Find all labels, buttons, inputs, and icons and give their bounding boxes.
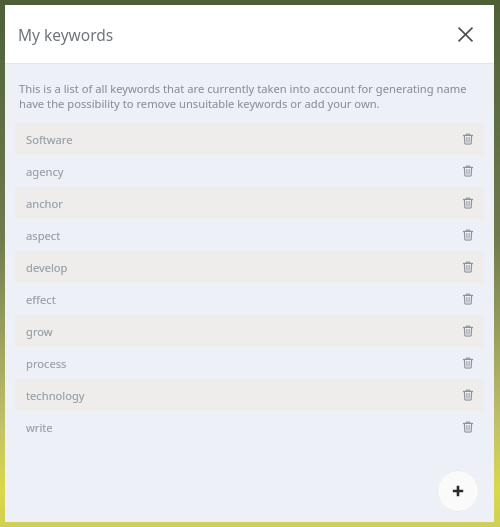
button[interactable]: Add keyword (437, 470, 479, 512)
staticText: grow (26, 324, 454, 339)
button[interactable]: write (15, 411, 484, 443)
button[interactable]: grow (15, 315, 484, 347)
button[interactable]: Delete agency (454, 156, 481, 186)
staticText: technology (26, 388, 454, 403)
button[interactable]: Delete Software (454, 124, 481, 154)
staticText: My keywords (18, 24, 114, 45)
button[interactable]: Delete effect (454, 284, 481, 314)
staticText: process (26, 356, 454, 371)
button[interactable]: Software (15, 123, 484, 155)
staticText: agency (26, 164, 454, 179)
button[interactable]: Close (448, 17, 482, 51)
button[interactable]: effect (15, 283, 484, 315)
button[interactable]: Delete aspect (454, 220, 481, 250)
staticText: aspect (26, 228, 454, 243)
button[interactable]: Delete develop (454, 252, 481, 282)
staticText: develop (26, 260, 454, 275)
button[interactable]: Delete process (454, 348, 481, 378)
staticText: write (26, 420, 454, 435)
button[interactable]: aspect (15, 219, 484, 251)
button[interactable]: Delete technology (454, 380, 481, 410)
button[interactable]: Delete anchor (454, 188, 481, 218)
button[interactable]: Delete write (454, 412, 481, 442)
button[interactable]: agency (15, 155, 484, 187)
staticText: have the possibility to remove unsuitabl… (19, 96, 380, 111)
staticText: This is a list of all keywords that are … (19, 81, 480, 96)
staticText: effect (26, 292, 454, 307)
button[interactable]: anchor (15, 187, 484, 219)
staticText: Software (26, 132, 454, 147)
button[interactable]: process (15, 347, 484, 379)
button[interactable]: technology (15, 379, 484, 411)
button[interactable]: develop (15, 251, 484, 283)
staticText: anchor (26, 196, 454, 211)
button[interactable]: Delete grow (454, 316, 481, 346)
